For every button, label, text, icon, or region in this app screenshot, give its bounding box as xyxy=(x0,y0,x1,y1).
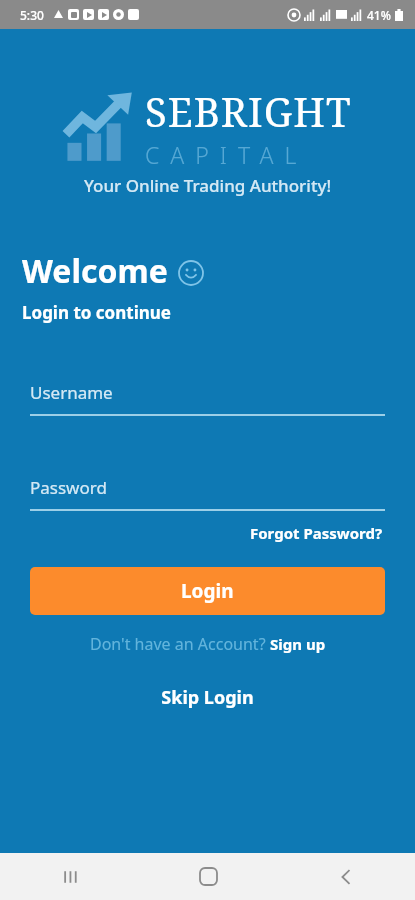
staticText: Login to continue xyxy=(22,301,172,324)
staticText: 41% xyxy=(367,7,391,23)
button[interactable]: Back xyxy=(277,853,415,900)
staticText: CAPITAL xyxy=(145,139,308,170)
staticText: Don't have an Account? xyxy=(90,633,270,655)
staticText: Your Online Trading Authority! xyxy=(84,174,332,197)
staticText: SEBRIGHT xyxy=(145,84,352,138)
button[interactable]: Sign up xyxy=(270,631,326,657)
staticText: Username xyxy=(30,381,113,404)
staticText: Welcome xyxy=(22,249,168,293)
staticText: Password xyxy=(30,476,107,499)
button[interactable]: Username xyxy=(30,381,385,416)
button[interactable]: Login xyxy=(30,567,385,615)
button[interactable]: Recent apps xyxy=(0,853,139,900)
button[interactable]: Home xyxy=(139,853,277,900)
button[interactable]: Skip Login xyxy=(153,680,262,715)
button[interactable]: Password xyxy=(30,476,385,511)
button[interactable]: Forgot Password? xyxy=(248,519,385,547)
staticText: 5:30 xyxy=(20,7,44,23)
staticText: Login xyxy=(181,578,234,604)
